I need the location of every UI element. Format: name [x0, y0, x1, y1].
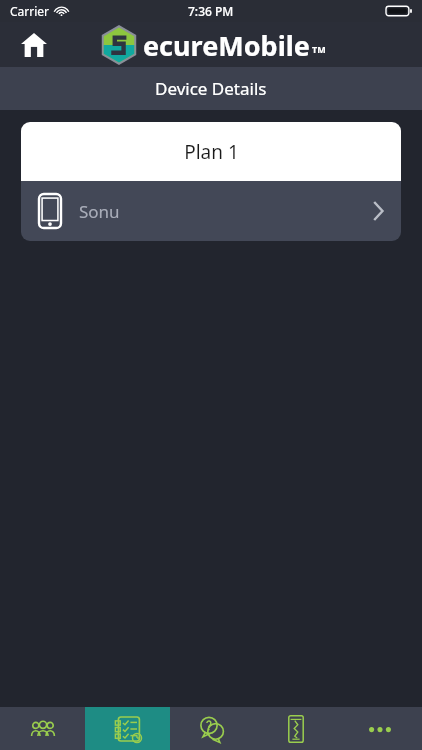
staticText: Device Details — [155, 77, 267, 100]
button[interactable]: Help — [170, 707, 254, 750]
staticText: Carrier — [10, 3, 50, 19]
button[interactable]: More — [338, 707, 422, 750]
button[interactable]: Checklist — [85, 707, 170, 750]
button[interactable]: Contacts — [0, 707, 85, 750]
button[interactable]: Sonu — [21, 181, 401, 241]
button[interactable]: Device — [254, 707, 338, 750]
staticText: Plan 1 — [184, 139, 239, 165]
button[interactable]: Home — [16, 27, 52, 63]
staticText: 7:36 PM — [188, 3, 234, 19]
staticText: TM — [312, 43, 326, 55]
staticText: Sonu — [79, 200, 120, 223]
staticText: ecureMobile — [143, 27, 310, 64]
